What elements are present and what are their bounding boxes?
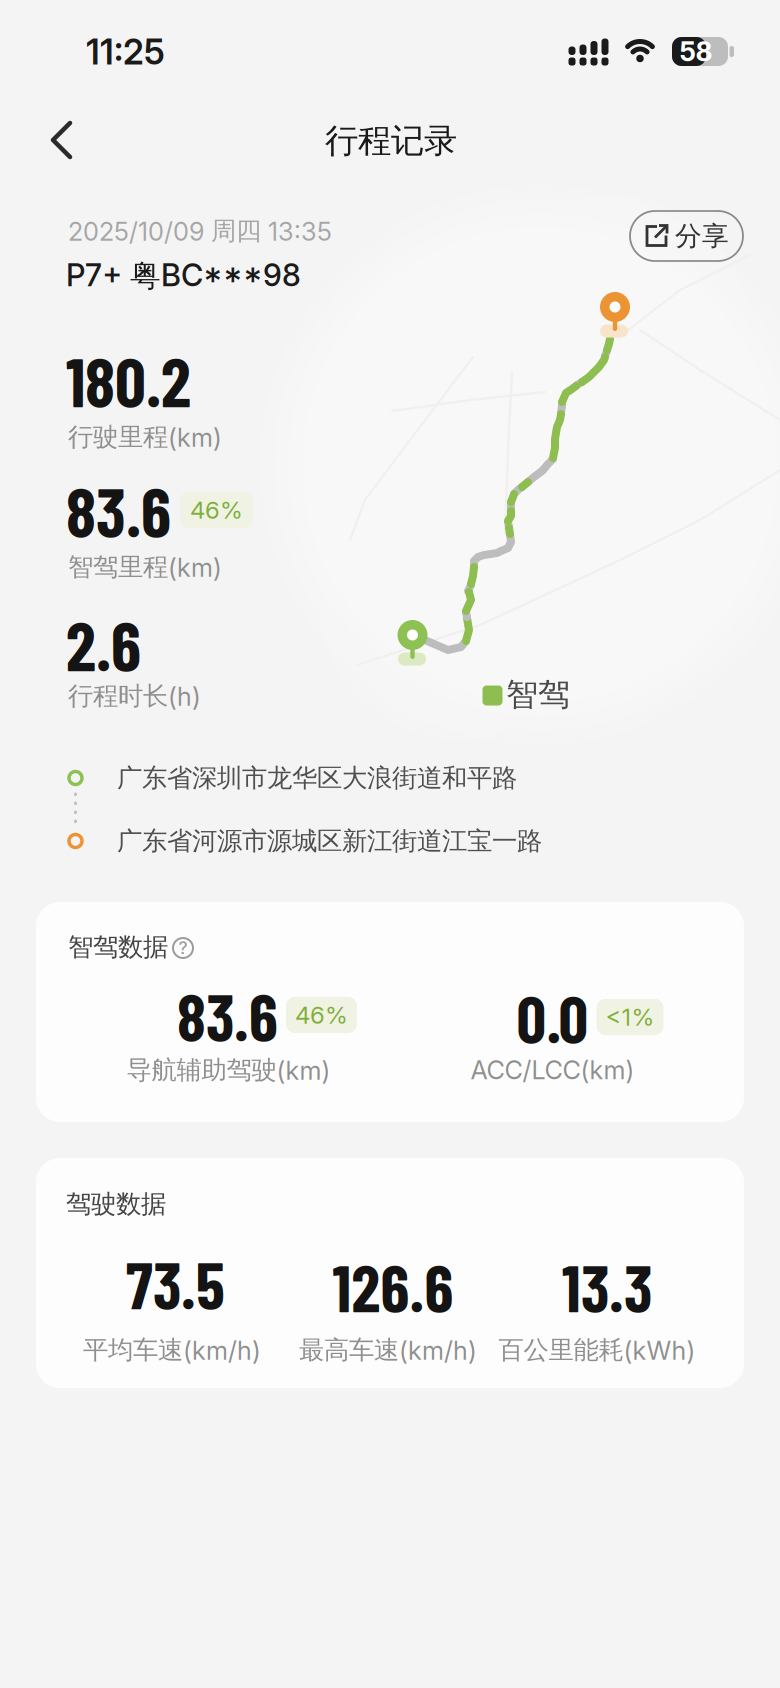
staticText: 126.6 (332, 1247, 453, 1325)
staticText: ACC/LCC(km) (470, 1055, 634, 1085)
staticText: 驾驶数据 (66, 1188, 166, 1219)
staticText: 11:25 (86, 32, 165, 72)
staticText: 导航辅助驾驶(km) (126, 1054, 330, 1085)
staticText: 智驾里程(km) (68, 551, 222, 582)
staticText: 0.0 (516, 978, 588, 1056)
staticText: P7+ 粤BC***98 (66, 257, 301, 295)
staticText: 分享 (675, 220, 729, 252)
staticText: 最高车速(km/h) (299, 1334, 477, 1365)
staticText: 行程记录 (325, 120, 457, 161)
staticText: 广东省河源市源城区新江街道江宝一路 (117, 825, 542, 856)
staticText: 2025/10/09 周四 13:35 (68, 215, 332, 246)
staticText: <1% (605, 1003, 654, 1031)
button[interactable]: Back (40, 119, 84, 161)
staticText: 46% (295, 1001, 348, 1029)
button[interactable]: 智驾数据说明 (169, 934, 197, 962)
staticText: 百公里能耗(kWh) (498, 1334, 695, 1365)
staticText: 行程时长(h) (68, 680, 201, 711)
staticText: 83.6 (177, 976, 278, 1054)
staticText: 智驾 (506, 675, 570, 714)
button[interactable]: 分享 (630, 211, 743, 261)
staticText: 83.6 (66, 469, 171, 551)
staticText: ? (178, 938, 187, 958)
staticText: 180.2 (66, 339, 191, 421)
staticText: 58 (679, 36, 712, 67)
staticText: 2.6 (66, 603, 141, 685)
staticText: 行驶里程(km) (68, 421, 222, 452)
staticText: 广东省深圳市龙华区大浪街道和平路 (117, 762, 517, 793)
staticText: 平均车速(km/h) (83, 1334, 261, 1365)
staticText: 46% (190, 496, 243, 524)
staticText: 13.3 (562, 1247, 652, 1325)
staticText: 73.5 (126, 1244, 225, 1322)
staticText: 智驾数据 (68, 931, 168, 962)
